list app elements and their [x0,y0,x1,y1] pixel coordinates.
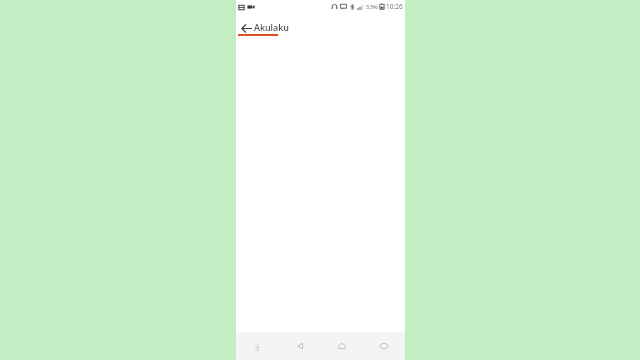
staticText: Akulaku [254,21,289,33]
button[interactable]: Hide [236,332,279,360]
staticText: 10:26 [386,2,403,11]
button[interactable]: Home [321,332,363,360]
button[interactable]: Akulaku [253,19,290,35]
button[interactable]: Back [238,20,255,37]
button[interactable]: Recent apps [363,332,405,360]
staticText: 53% [366,3,378,11]
button[interactable]: Back [279,332,321,360]
